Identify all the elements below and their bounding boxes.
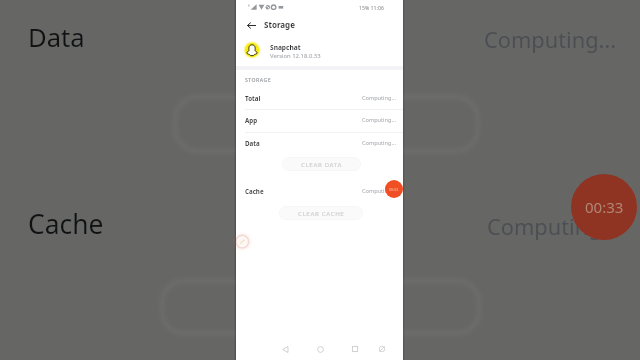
staticText: STORAGE [245, 76, 272, 83]
staticText: Computing... [362, 139, 396, 147]
staticText: Version 12.18.0.33 [270, 52, 321, 60]
button[interactable]: Cache [236, 180, 403, 202]
staticText: Data [28, 20, 85, 55]
button[interactable]: App [236, 109, 403, 131]
staticText: Computing... [484, 25, 617, 55]
button[interactable]: Snapchat [236, 36, 403, 66]
staticText: Computing... [487, 212, 620, 242]
staticText: Cache [245, 187, 264, 195]
button[interactable]: Home [313, 342, 327, 356]
button[interactable]: Screenshot [375, 342, 389, 356]
staticText: CLEAR CACHE [298, 209, 345, 217]
staticText: Total [245, 94, 261, 102]
staticText: App [245, 116, 258, 124]
staticText: 00:33 [585, 197, 624, 217]
button[interactable]: CLEAR CACHE [279, 206, 363, 220]
button[interactable]: Back [243, 17, 259, 33]
staticText: Storage [264, 19, 295, 30]
staticText: Data [245, 139, 260, 147]
staticText: Computing... [362, 187, 396, 195]
staticText: 00:33 [389, 187, 399, 192]
staticText: Computing... [362, 116, 396, 124]
staticText: CLEAR DATA [301, 160, 343, 168]
button[interactable]: CLEAR DATA [282, 157, 361, 171]
button[interactable]: Data [236, 132, 403, 154]
staticText: Snapchat [270, 43, 301, 52]
staticText: 15% 11:06 [359, 4, 384, 11]
staticText: Cache [28, 206, 104, 242]
button[interactable]: Recording timer [385, 180, 403, 198]
staticText: Computing... [362, 94, 396, 102]
button[interactable]: Total [236, 87, 403, 109]
button[interactable]: Recent apps [348, 342, 362, 356]
button[interactable]: Back [278, 342, 292, 356]
